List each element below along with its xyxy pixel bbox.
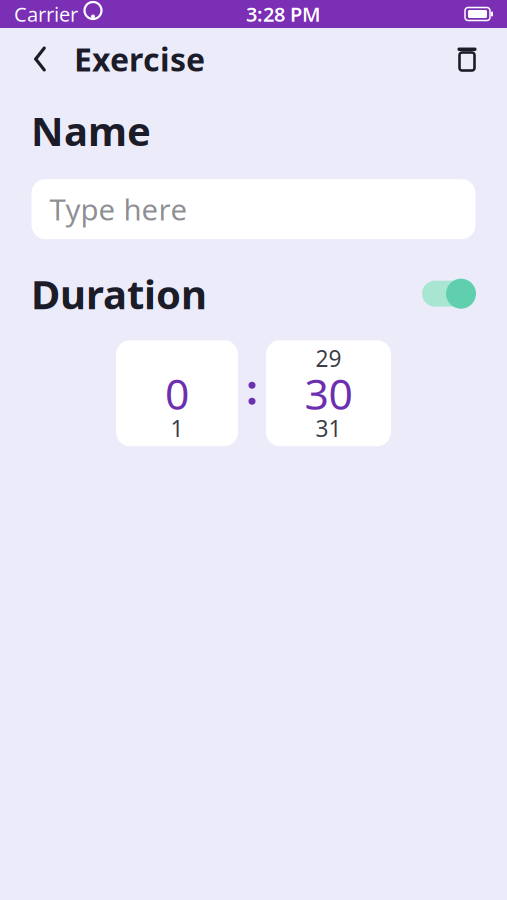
staticText: 1 bbox=[170, 413, 183, 443]
staticText: 30 bbox=[304, 365, 352, 422]
button[interactable]: Back bbox=[18, 37, 62, 81]
staticText: 29 bbox=[315, 343, 341, 373]
staticText: Type here bbox=[49, 190, 187, 229]
staticText: Carrier bbox=[14, 1, 78, 27]
button[interactable]: Type here bbox=[31, 179, 475, 239]
staticText: Name bbox=[31, 104, 151, 157]
button[interactable]: Picker 0 bbox=[116, 340, 238, 446]
staticText: 0 bbox=[165, 365, 189, 422]
staticText: Duration bbox=[31, 267, 207, 320]
staticText: 3:28 PM bbox=[246, 1, 321, 27]
staticText: 31 bbox=[315, 413, 341, 443]
button[interactable]: Duration toggle bbox=[420, 278, 476, 310]
button[interactable]: Picker 30 bbox=[266, 340, 391, 446]
button[interactable]: Delete bbox=[445, 37, 489, 81]
staticText: Exercise bbox=[74, 38, 205, 80]
